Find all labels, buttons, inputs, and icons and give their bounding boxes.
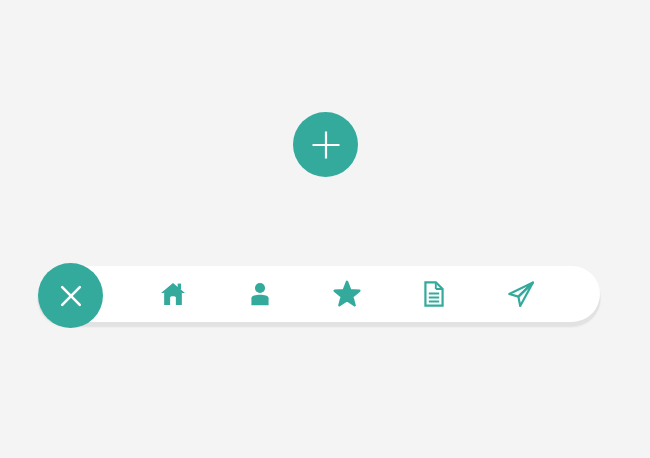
button[interactable]: Close (38, 263, 103, 328)
button[interactable]: Profile (216, 266, 303, 322)
button[interactable]: Documents (390, 266, 477, 322)
button[interactable]: Home (129, 266, 216, 322)
button[interactable]: Add (293, 112, 358, 177)
button[interactable]: Favorites (303, 266, 390, 322)
button[interactable]: Send (477, 266, 564, 322)
